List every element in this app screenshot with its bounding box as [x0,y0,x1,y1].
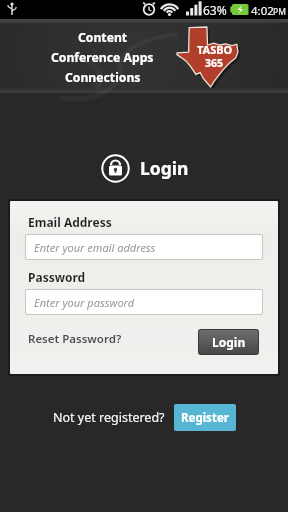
button[interactable]: Enter your email address [26,235,262,259]
staticText: Login [212,334,246,350]
button[interactable]: Enter your password [26,290,262,314]
button[interactable]: Login [199,330,258,354]
staticText: Content [78,29,128,46]
staticText: TASBO [197,42,233,57]
staticText: Reset Password? [28,331,122,347]
staticText: Register [181,410,229,426]
staticText: Enter your password [34,295,135,310]
staticText: PM [273,6,286,18]
staticText: 4:02 [251,3,274,19]
staticText: Email Address [28,214,112,230]
button[interactable]: Reset Password? [28,331,122,347]
staticText: 365 [205,56,224,70]
staticText: 63% [203,2,227,18]
staticText: Login [140,156,189,180]
staticText: Connections [65,69,141,86]
staticText: Conference Apps [51,49,154,66]
staticText: Password [28,269,86,285]
staticText: Not yet registered? [53,409,165,426]
staticText: Enter your email address [34,240,156,255]
button[interactable]: Register [174,404,236,431]
